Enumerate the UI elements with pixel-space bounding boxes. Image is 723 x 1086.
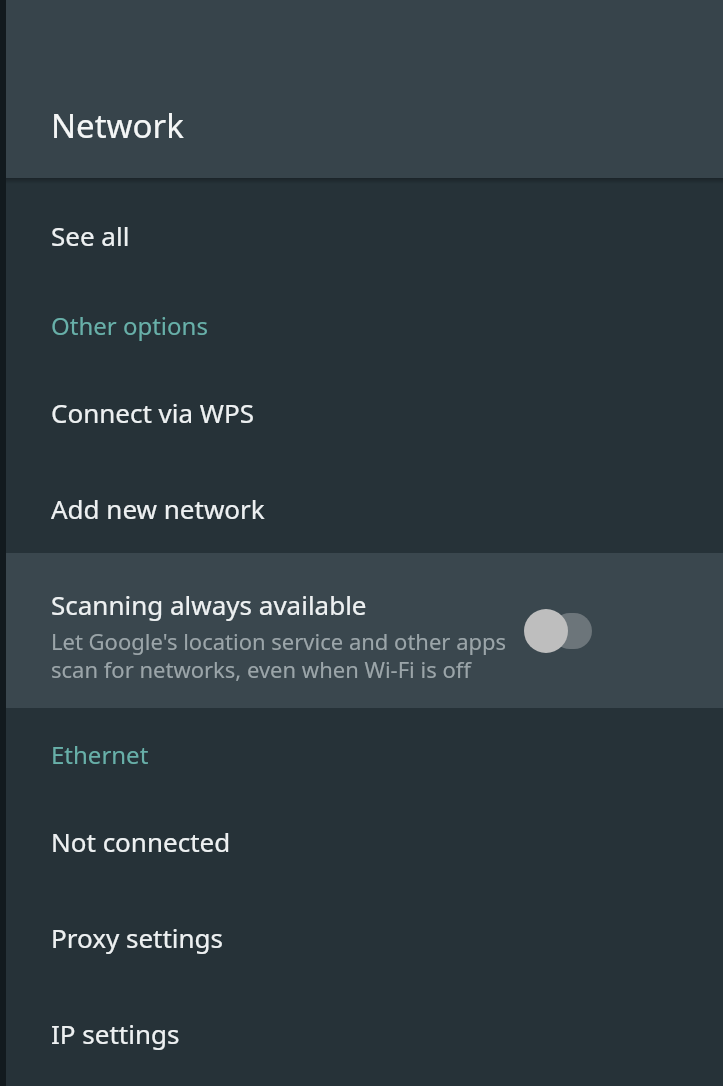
button[interactable] [0, 462, 723, 553]
staticText: Connect via WPS [51, 395, 255, 430]
staticText: Add new network [51, 491, 265, 526]
staticText: Let Google's location service and other … [51, 626, 507, 684]
button[interactable] [0, 984, 723, 1080]
staticText: Scanning always available [51, 587, 367, 622]
button[interactable] [0, 183, 723, 278]
button[interactable] [0, 278, 723, 366]
staticText: Other options [51, 309, 208, 342]
button[interactable] [0, 553, 723, 708]
button[interactable]: Scanning always available switch, off [512, 600, 610, 662]
staticText: Proxy settings [51, 920, 224, 955]
button[interactable] [0, 708, 723, 796]
button[interactable] [0, 796, 723, 888]
staticText: Ethernet [51, 738, 149, 771]
staticText: Not connected [51, 824, 231, 859]
button[interactable] [0, 366, 723, 462]
button[interactable] [0, 888, 723, 984]
staticText: IP settings [51, 1016, 180, 1051]
staticText: See all [51, 218, 130, 253]
staticText: Network [51, 103, 184, 148]
